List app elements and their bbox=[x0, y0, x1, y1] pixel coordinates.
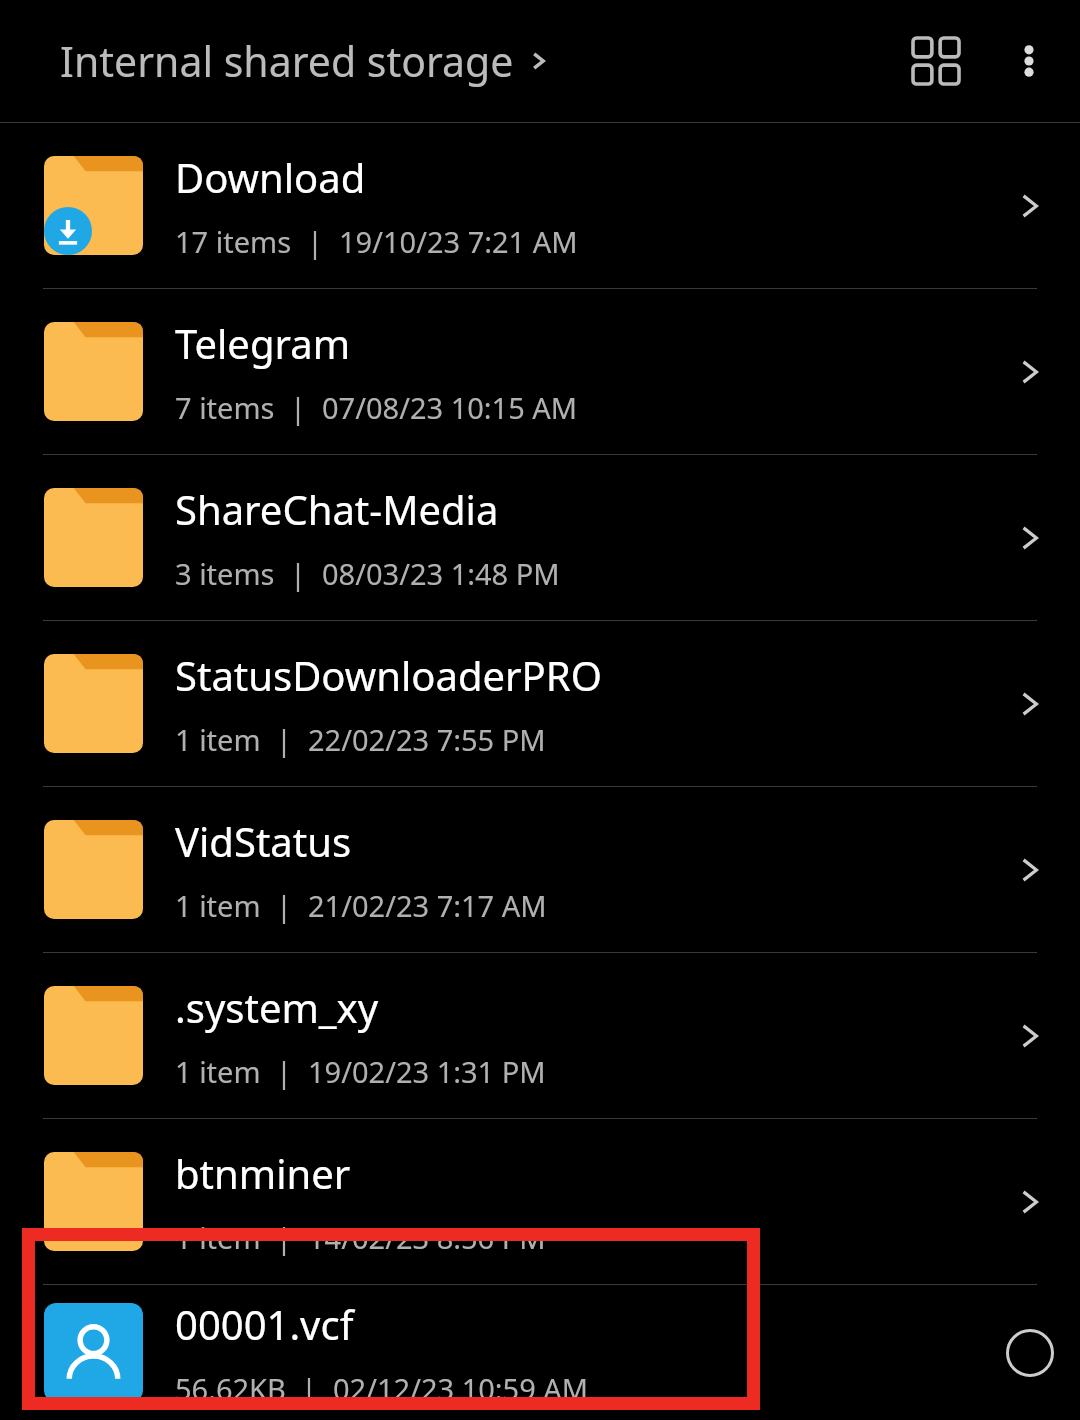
staticText: 17 items bbox=[175, 222, 292, 261]
staticText: 14/02/23 8:56 PM bbox=[308, 1218, 546, 1257]
staticText: Telegram bbox=[175, 316, 351, 370]
staticText: 19/10/23 7:21 AM bbox=[339, 222, 578, 261]
button[interactable]: Select item bbox=[994, 1317, 1066, 1389]
button[interactable]: Telegram bbox=[0, 289, 1080, 454]
staticText: 1 item bbox=[175, 1052, 261, 1091]
staticText: 3 items bbox=[175, 554, 275, 593]
staticText: | bbox=[292, 222, 339, 261]
button[interactable]: Internal shared storage bbox=[60, 33, 554, 89]
staticText: | bbox=[261, 720, 308, 759]
button[interactable]: btnminer bbox=[0, 1119, 1080, 1284]
staticText: | bbox=[286, 1369, 333, 1408]
staticText: 19/02/23 1:31 PM bbox=[308, 1052, 546, 1091]
button[interactable]: Change view bbox=[888, 13, 984, 109]
button[interactable]: More options bbox=[984, 13, 1074, 109]
staticText: 00001.vcf bbox=[175, 1297, 354, 1351]
staticText: 08/03/23 1:48 PM bbox=[322, 554, 560, 593]
staticText: 1 item bbox=[175, 720, 261, 759]
button[interactable]: VidStatus bbox=[0, 787, 1080, 952]
staticText: 7 items bbox=[175, 388, 275, 427]
staticText: | bbox=[261, 1218, 308, 1257]
staticText: 1 item bbox=[175, 886, 261, 925]
staticText: Internal shared storage bbox=[60, 33, 514, 89]
staticText: 21/02/23 7:17 AM bbox=[308, 886, 547, 925]
button[interactable]: ShareChat-Media bbox=[0, 455, 1080, 620]
staticText: 56.62KB bbox=[175, 1369, 286, 1408]
button[interactable]: 00001.vcf bbox=[0, 1285, 1080, 1420]
button[interactable]: Download bbox=[0, 123, 1080, 288]
staticText: 1 item bbox=[175, 1218, 261, 1257]
staticText: 02/12/23 10:59 AM bbox=[333, 1369, 589, 1408]
staticText: 22/02/23 7:55 PM bbox=[308, 720, 546, 759]
staticText: .system_xy bbox=[175, 980, 379, 1034]
staticText: StatusDownloaderPRO bbox=[175, 648, 602, 702]
staticText: VidStatus bbox=[175, 814, 352, 868]
staticText: | bbox=[275, 388, 322, 427]
staticText: ShareChat-Media bbox=[175, 482, 499, 536]
staticText: 07/08/23 10:15 AM bbox=[322, 388, 578, 427]
button[interactable]: StatusDownloaderPRO bbox=[0, 621, 1080, 786]
staticText: Download bbox=[175, 150, 366, 204]
button[interactable]: .system_xy bbox=[0, 953, 1080, 1118]
staticText: btnminer bbox=[175, 1146, 351, 1200]
staticText: | bbox=[261, 886, 308, 925]
staticText: | bbox=[275, 554, 322, 593]
staticText: | bbox=[261, 1052, 308, 1091]
